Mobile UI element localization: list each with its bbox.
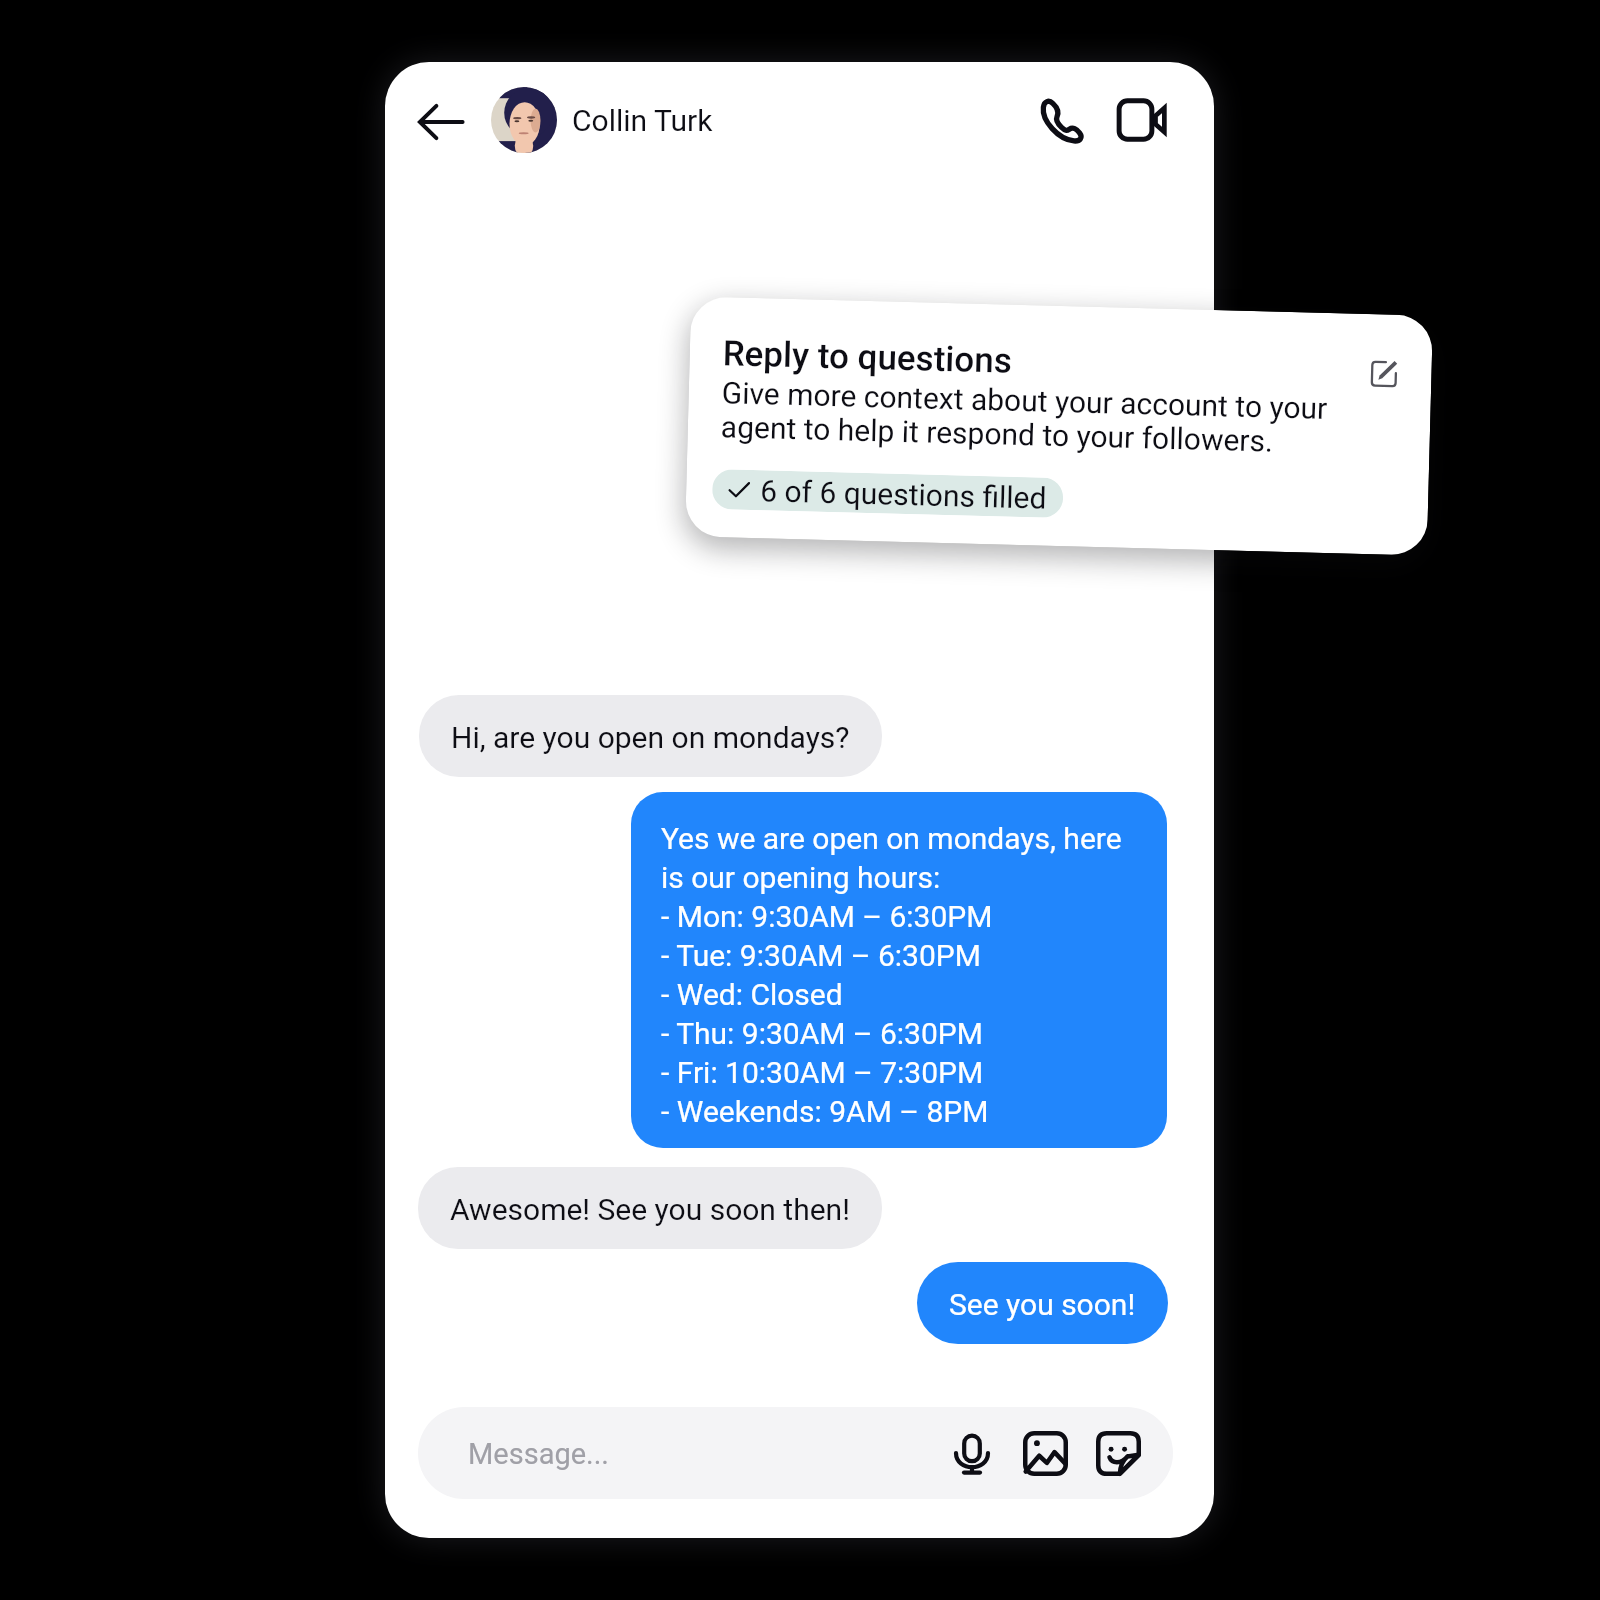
staticText: 6 of 6 questions filled [760, 472, 1047, 516]
button[interactable]: Back [413, 94, 469, 150]
button[interactable]: Reply to questions [685, 296, 1433, 556]
staticText: Yes we are open on mondays, here is our … [661, 818, 1135, 1130]
button[interactable]: Edit [1363, 353, 1404, 394]
button[interactable]: Yes we are open on mondays, here is our … [631, 792, 1167, 1148]
button[interactable]: Hi, are you open on mondays? [419, 695, 882, 777]
staticText: See you soon! [949, 1283, 1136, 1323]
button[interactable]: Photo [1020, 1428, 1070, 1478]
staticText: Message... [468, 1434, 610, 1472]
staticText: Collin Turk [572, 101, 713, 139]
staticText: Hi, are you open on mondays? [451, 716, 850, 756]
button[interactable]: Message... [418, 1407, 1173, 1499]
button[interactable]: Call [1030, 88, 1094, 152]
staticText: Reply to questions [722, 333, 1013, 382]
button[interactable]: Video call [1110, 88, 1174, 152]
button[interactable]: See you soon! [917, 1262, 1168, 1344]
button[interactable]: Collin Turk [491, 87, 713, 153]
button[interactable]: Voice message [947, 1428, 997, 1478]
staticText: Give more context about your account to … [720, 376, 1340, 460]
button[interactable]: Awesome! See you soon then! [418, 1167, 882, 1249]
staticText: Awesome! See you soon then! [450, 1188, 850, 1228]
button[interactable]: Sticker [1093, 1428, 1143, 1478]
